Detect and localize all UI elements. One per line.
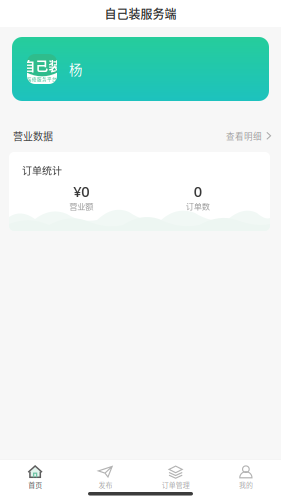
staticText: 订单数 [186,200,210,212]
staticText: 订单统计 [22,163,62,177]
staticText: 装修服务平台 [27,76,57,82]
button[interactable]: 首页 [0,460,70,494]
staticText: 首页 [28,480,42,490]
staticText: 杨 [69,59,82,79]
staticText: 营业额 [69,200,93,212]
button[interactable]: 我的 [211,460,281,494]
staticText: 订单管理 [162,480,190,490]
staticText: 自己装服务端 [104,5,176,22]
button[interactable]: 发布 [70,460,140,494]
staticText: 我的 [239,480,253,490]
staticText: 营业数据 [13,129,53,143]
staticText: 发布 [98,480,112,490]
staticText: 0 [194,181,202,201]
staticText: 自己装 [22,56,61,74]
button[interactable]: 订单管理 [140,460,211,494]
button[interactable]: 查看明细 [226,126,272,146]
staticText: 查看明细 [226,130,262,142]
staticText: ¥0 [73,181,89,201]
